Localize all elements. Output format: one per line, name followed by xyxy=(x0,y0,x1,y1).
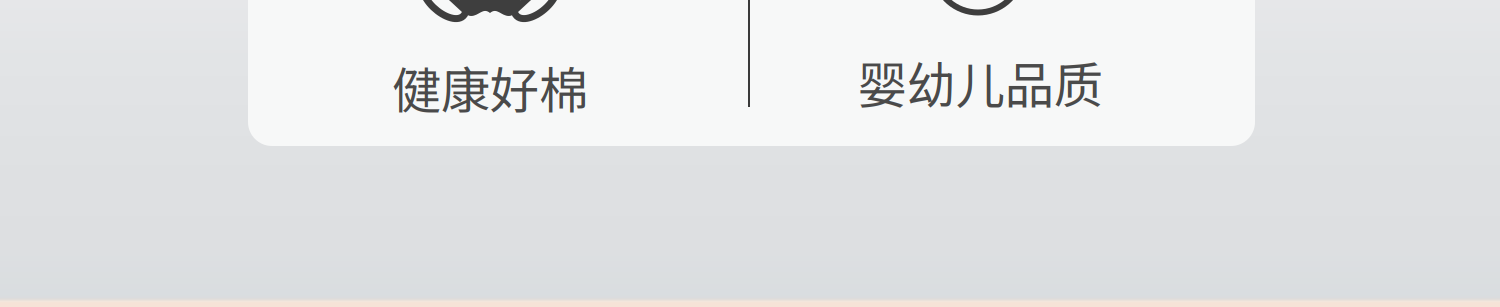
staticText: 健康好棉 xyxy=(392,51,588,123)
staticText: 婴幼儿品质 xyxy=(857,46,1102,118)
button[interactable]: 健康好棉 xyxy=(0,0,1500,307)
button[interactable]: 婴幼儿品质 xyxy=(0,0,1500,307)
